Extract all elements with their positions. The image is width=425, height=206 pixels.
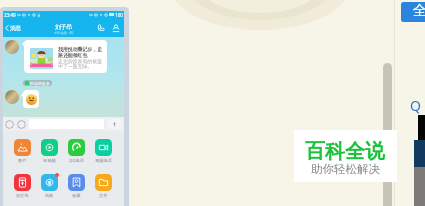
staticText: 百科全说 xyxy=(305,139,385,164)
button[interactable]: 消息 xyxy=(5,23,22,33)
button[interactable]: Profile xyxy=(112,24,120,32)
button[interactable]: 发红包 xyxy=(9,174,36,198)
staticText: 路还能领红包 xyxy=(58,52,88,58)
button[interactable] xyxy=(23,90,39,108)
staticText: Q 百 xyxy=(410,96,425,115)
staticText: 发红包 xyxy=(16,193,29,198)
button[interactable]: 视频电话 xyxy=(90,139,117,163)
button[interactable]: Keyboard xyxy=(17,120,26,129)
staticText: 100 xyxy=(115,12,123,18)
button[interactable]: Avatar xyxy=(5,90,19,104)
staticText: 中了一瓶无味。 xyxy=(58,63,93,69)
button[interactable]: Voice call xyxy=(97,24,105,32)
staticText: 转账 xyxy=(45,193,54,198)
button[interactable]: 收藏 xyxy=(63,174,90,198)
staticText: 我用悦动圈记步，走 xyxy=(58,46,103,52)
staticText: 文件 xyxy=(99,193,108,198)
button[interactable]: 悦动健身多 xyxy=(25,80,50,86)
staticText: 图片 xyxy=(18,158,27,163)
button[interactable]: 全部 xyxy=(401,2,425,22)
button[interactable]: Avatar xyxy=(5,40,19,54)
staticText: 手机在线 · 4G xyxy=(54,31,74,35)
staticText: 走完后惊喜有的被盖 xyxy=(58,58,103,64)
button[interactable]: Emoji xyxy=(5,120,14,129)
staticText: 悦动健身多 xyxy=(30,81,50,86)
button[interactable]: 转账 xyxy=(36,174,63,198)
staticText: 23:49 xyxy=(4,12,16,18)
staticText: 刘子昂 xyxy=(55,23,73,30)
staticText: 短视频 xyxy=(43,158,56,163)
staticText: QQ电话 xyxy=(69,158,84,164)
button[interactable]: 文件 xyxy=(90,174,117,198)
staticText: 消息 xyxy=(10,25,22,32)
staticText: 收藏 xyxy=(72,193,81,198)
staticText: 视频电话 xyxy=(95,158,112,163)
button[interactable]: Voice xyxy=(107,119,121,129)
button[interactable]: QQ电话 xyxy=(63,139,90,164)
staticText: 助你轻松解决 xyxy=(311,162,380,176)
button[interactable]: 短视频 xyxy=(36,139,63,163)
staticText: 全部 xyxy=(413,2,425,22)
button[interactable]: 图片 xyxy=(9,139,36,163)
button[interactable]: 我用悦动圈记步，走 xyxy=(24,40,107,73)
